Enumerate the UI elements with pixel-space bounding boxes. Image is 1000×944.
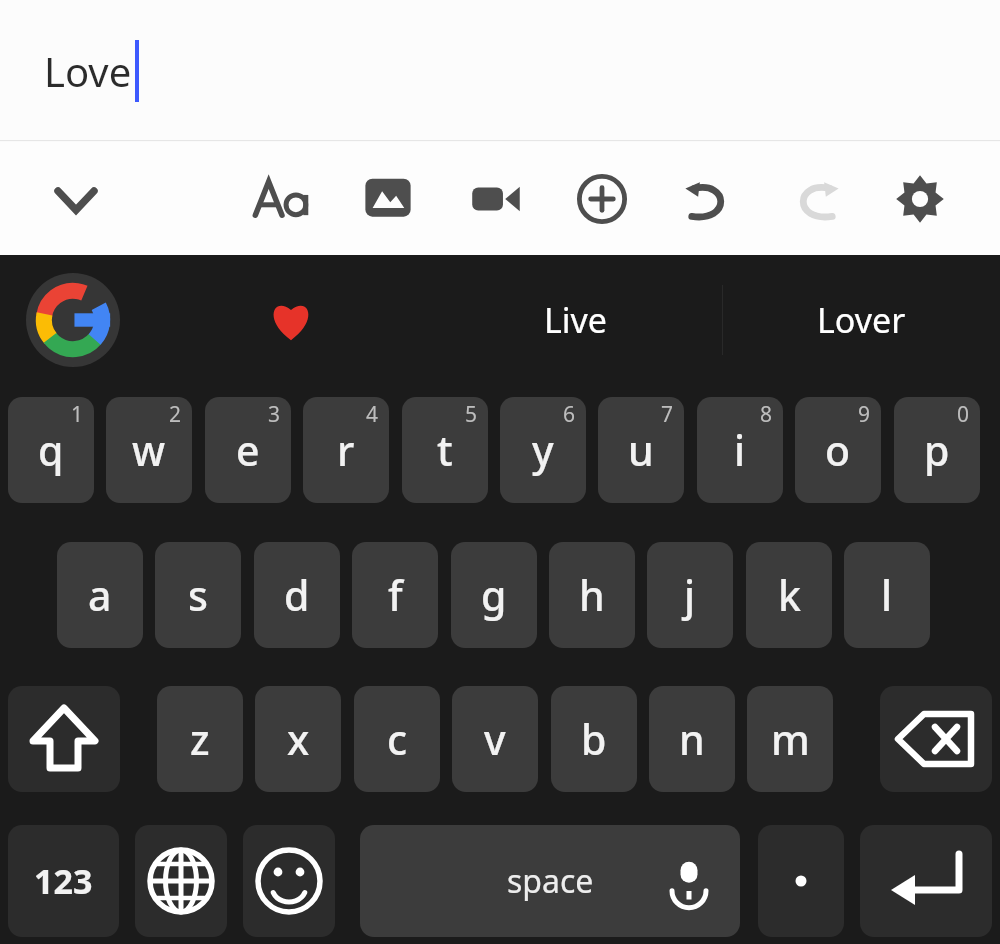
button[interactable]: t [402, 397, 488, 503]
button[interactable]: Undo [664, 142, 752, 255]
button[interactable]: 123 [8, 825, 119, 937]
staticText: y [532, 422, 554, 478]
button[interactable]: i [697, 397, 783, 503]
button[interactable]: q [8, 397, 94, 503]
button[interactable]: Change language [135, 825, 227, 937]
button[interactable]: m [747, 686, 833, 792]
staticText: i [734, 422, 746, 478]
staticText: q [38, 422, 64, 478]
staticText: c [387, 711, 408, 767]
button[interactable]: a [57, 542, 143, 648]
button[interactable]: u [598, 397, 684, 503]
button[interactable]: Backspace [880, 686, 992, 792]
button[interactable]: z [157, 686, 243, 792]
staticText: l [881, 567, 893, 623]
button[interactable]: p [894, 397, 980, 503]
staticText: z [190, 711, 210, 767]
button[interactable]: Google Assistant [26, 273, 120, 367]
staticText: f [388, 567, 403, 623]
button[interactable]: Add attachment [558, 142, 646, 255]
button[interactable]: r [303, 397, 389, 503]
button[interactable]: Redo [772, 142, 860, 255]
button[interactable]: d [254, 542, 340, 648]
staticText: x [287, 711, 310, 767]
button[interactable]: f [352, 542, 438, 648]
staticText: 1 [71, 400, 84, 429]
staticText: p [924, 422, 950, 478]
button[interactable]: Insert image [344, 142, 432, 255]
button[interactable]: g [451, 542, 537, 648]
button[interactable]: e [205, 397, 291, 503]
button[interactable]: Hide keyboard [32, 142, 120, 255]
button[interactable]: v [452, 686, 538, 792]
staticText: 123 [34, 858, 93, 904]
button[interactable]: k [746, 542, 832, 648]
staticText: 0 [957, 400, 970, 429]
staticText: a [88, 567, 112, 623]
staticText: b [581, 711, 607, 767]
button[interactable]: j [647, 542, 733, 648]
button[interactable] [196, 255, 386, 385]
button[interactable]: Emoji [243, 825, 335, 937]
button[interactable]: Text format [238, 142, 326, 255]
staticText: w [132, 422, 166, 478]
staticText: e [236, 422, 260, 478]
staticText: v [484, 711, 506, 767]
staticText: space [507, 859, 594, 903]
button[interactable]: b [551, 686, 637, 792]
button[interactable]: Shift [8, 686, 120, 792]
staticText: t [437, 422, 453, 478]
button[interactable]: l [844, 542, 930, 648]
staticText: h [579, 567, 605, 623]
button[interactable]: c [354, 686, 440, 792]
staticText: d [284, 567, 310, 623]
button[interactable]: h [549, 542, 635, 648]
staticText: 6 [563, 400, 576, 429]
button[interactable]: y [500, 397, 586, 503]
button[interactable]: o [795, 397, 881, 503]
button[interactable]: w [106, 397, 192, 503]
staticText: g [481, 567, 507, 623]
button[interactable]: Period [758, 825, 844, 937]
button[interactable]: Love [0, 0, 1000, 141]
staticText: Love [44, 44, 132, 98]
button[interactable]: space [360, 825, 740, 937]
button[interactable]: x [255, 686, 341, 792]
staticText: u [628, 422, 654, 478]
staticText: m [771, 711, 810, 767]
button[interactable]: Enter [860, 825, 992, 937]
staticText: n [679, 711, 705, 767]
staticText: 3 [268, 400, 281, 429]
staticText: s [188, 567, 208, 623]
button[interactable]: Insert video [452, 142, 540, 255]
staticText: k [778, 567, 801, 623]
button[interactable]: n [649, 686, 735, 792]
staticText: 4 [366, 400, 379, 429]
staticText: 9 [858, 400, 871, 429]
staticText: 8 [760, 400, 773, 429]
staticText: 7 [661, 400, 674, 429]
staticText: r [337, 422, 355, 478]
staticText: j [684, 567, 696, 623]
button[interactable]: Settings [876, 142, 964, 255]
button[interactable]: Live [430, 255, 722, 385]
staticText: Lover [817, 297, 906, 343]
staticText: o [825, 422, 851, 478]
staticText: Live [544, 297, 608, 343]
button[interactable]: s [155, 542, 241, 648]
staticText: 2 [169, 400, 182, 429]
staticText: 5 [465, 400, 478, 429]
button[interactable]: Lover [723, 255, 1000, 385]
